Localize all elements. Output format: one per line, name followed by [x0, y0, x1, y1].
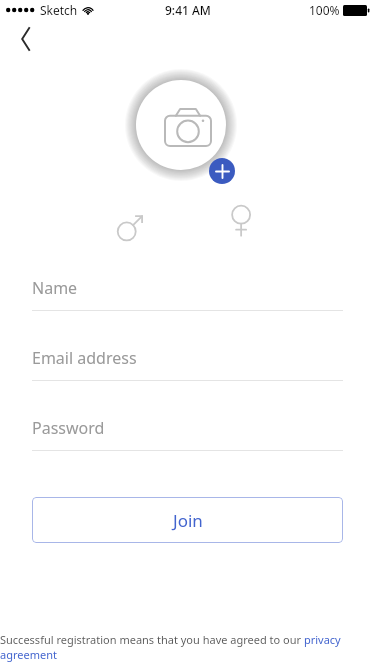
button[interactable]: Join — [32, 497, 343, 543]
staticText: 100% — [309, 2, 340, 18]
staticText: Sketch — [40, 2, 78, 18]
button[interactable]: Name — [32, 277, 343, 311]
button[interactable]: Add photo — [164, 107, 212, 147]
button[interactable]: Email address — [32, 347, 343, 381]
staticText: Email address — [32, 347, 137, 369]
button[interactable]: Successful registration means that you h… — [0, 632, 375, 662]
staticText: Password — [32, 417, 105, 439]
staticText: Join — [173, 509, 203, 532]
staticText: Name — [32, 277, 78, 299]
button[interactable]: Password — [32, 417, 343, 451]
button[interactable]: Male — [110, 205, 154, 249]
button[interactable]: Back — [8, 22, 42, 56]
button[interactable]: Add — [209, 158, 235, 184]
button[interactable]: Female — [220, 198, 264, 242]
staticText: 9:41 AM — [165, 2, 211, 18]
